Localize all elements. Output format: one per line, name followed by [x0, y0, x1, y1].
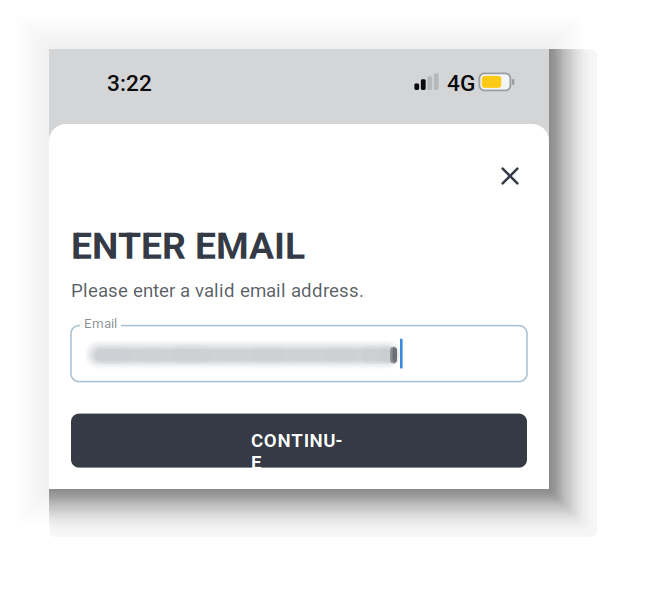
staticText: 3:22: [107, 70, 152, 97]
staticText: 4G: [447, 70, 475, 97]
staticText: ENTER EMAIL: [71, 224, 305, 268]
button[interactable]: Close: [492, 158, 528, 194]
button[interactable]: CONTINUE: [71, 414, 527, 468]
staticText: Please enter a valid email address.: [71, 280, 364, 302]
staticText: CONTINUE: [251, 430, 347, 452]
staticText: Email: [84, 316, 117, 331]
